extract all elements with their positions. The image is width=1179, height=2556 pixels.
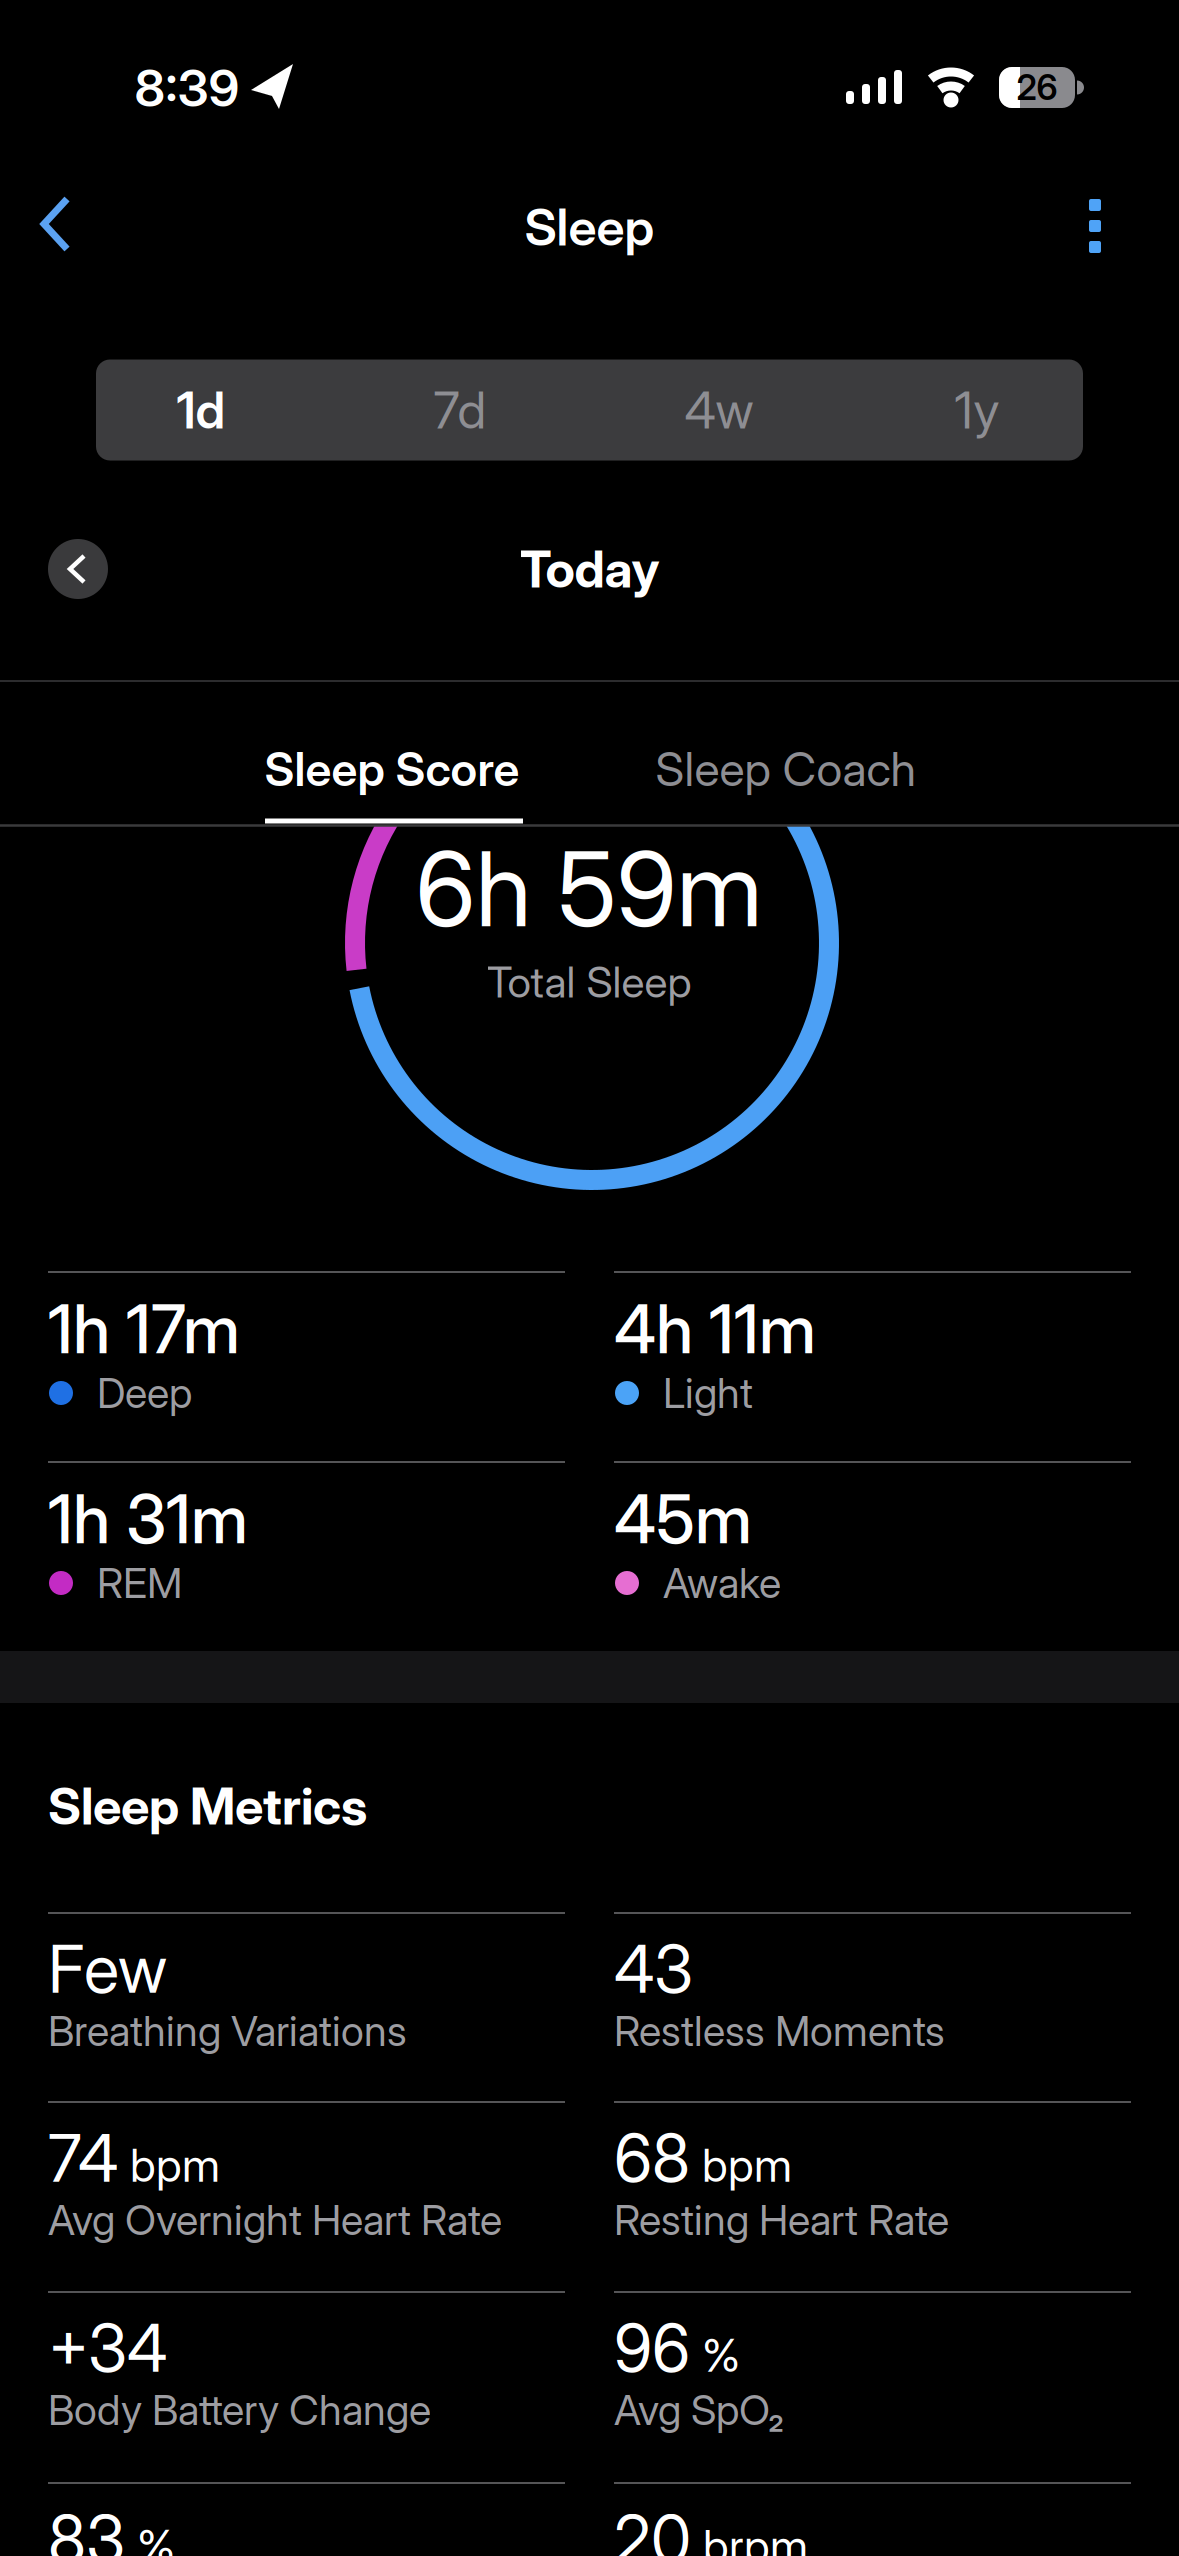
staticText: Body Battery Change — [48, 2386, 431, 2434]
staticText: Resting Heart Rate — [614, 2196, 949, 2244]
staticText: 83 — [48, 2500, 125, 2556]
staticText: Awake — [663, 1559, 781, 1607]
staticText: 7d — [433, 380, 486, 440]
staticText: 4w — [684, 380, 753, 440]
staticText: brpm — [703, 2519, 808, 2556]
staticText: Few — [48, 1930, 167, 2008]
staticText: 68 — [614, 2119, 690, 2197]
staticText: 20 — [614, 2500, 691, 2556]
staticText: Sleep — [524, 197, 654, 257]
staticText: bpm — [702, 2138, 792, 2192]
staticText: 26 — [1016, 67, 1057, 108]
staticText: Total Sleep — [486, 957, 691, 1007]
staticText: % — [137, 2519, 175, 2556]
staticText: 45m — [614, 1480, 752, 1558]
staticText: Avg SpO₂ — [614, 2386, 784, 2434]
staticText: 6h 59m — [415, 828, 762, 949]
staticText: Today — [519, 539, 659, 599]
staticText: Sleep Coach — [655, 741, 916, 797]
staticText: 74 — [48, 2119, 118, 2197]
staticText: Deep — [97, 1369, 192, 1417]
staticText: Breathing Variations — [48, 2007, 407, 2055]
staticText: 96 — [614, 2309, 690, 2387]
staticText: % — [702, 2328, 740, 2382]
staticText: 1h 17m — [48, 1290, 240, 1368]
staticText: Light — [663, 1369, 753, 1417]
staticText: REM — [97, 1559, 182, 1607]
staticText: 8:39 — [134, 58, 239, 118]
staticText: 1y — [954, 380, 999, 440]
staticText: Avg Overnight Heart Rate — [48, 2196, 502, 2244]
staticText: 4h 11m — [614, 1290, 816, 1368]
staticText: bpm — [130, 2138, 220, 2192]
staticText: Sleep Score — [264, 741, 519, 797]
staticText: 43 — [614, 1930, 693, 2008]
staticText: 1d — [176, 380, 225, 440]
staticText: Sleep Metrics — [48, 1776, 367, 1836]
staticText: +34 — [48, 2309, 167, 2387]
staticText: Restless Moments — [614, 2007, 945, 2055]
staticText: 1h 31m — [48, 1480, 248, 1558]
